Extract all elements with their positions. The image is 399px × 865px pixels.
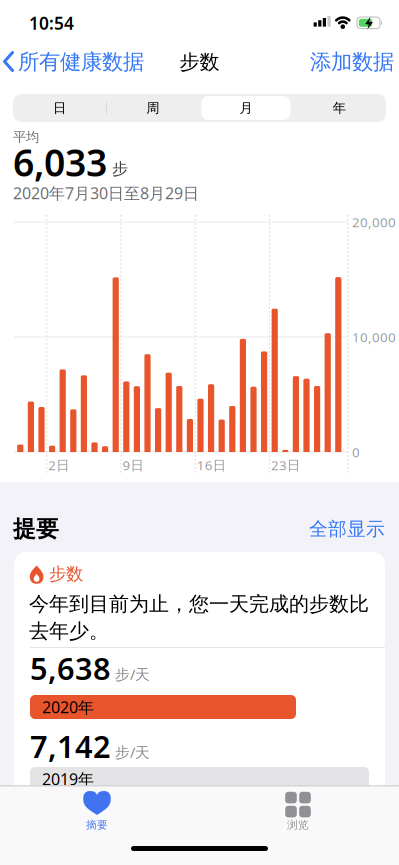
- staticText: 10,000: [352, 328, 396, 346]
- staticText: 6,033: [13, 137, 107, 187]
- staticText: 2019年: [42, 768, 94, 790]
- staticText: 步数: [179, 50, 219, 74]
- staticText: 2020年7月30日至8月29日: [13, 182, 199, 204]
- staticText: 年: [333, 100, 346, 116]
- staticText: 添加数据: [310, 49, 394, 75]
- staticText: 提要: [13, 515, 59, 543]
- button[interactable]: 月: [199, 94, 292, 122]
- staticText: 5,638: [30, 648, 111, 688]
- staticText: 所有健康数据: [18, 49, 144, 75]
- staticText: 摘要: [86, 818, 108, 831]
- button[interactable]: 年: [293, 94, 386, 122]
- staticText: 9日: [122, 456, 143, 474]
- button[interactable]: 全部显示: [265, 514, 385, 544]
- staticText: 20,000: [352, 213, 396, 231]
- staticText: 全部显示: [309, 517, 385, 540]
- staticText: 7,142: [30, 726, 111, 766]
- staticText: 23日: [271, 456, 300, 474]
- staticText: 今年到目前为止，您一天完成的步数比: [29, 592, 369, 616]
- staticText: 浏览: [287, 818, 309, 831]
- button[interactable]: [14, 552, 385, 802]
- button[interactable]: 周: [106, 94, 199, 122]
- staticText: 日: [53, 100, 66, 116]
- staticText: 步数: [49, 563, 83, 585]
- staticText: 平均: [13, 129, 39, 145]
- staticText: 步/天: [115, 664, 150, 684]
- button[interactable]: 浏览: [238, 790, 358, 840]
- staticText: 10:54: [29, 11, 74, 34]
- button[interactable]: 摘要: [37, 790, 157, 840]
- staticText: 0: [352, 443, 360, 461]
- staticText: 步/天: [115, 742, 150, 762]
- staticText: 去年少。: [29, 619, 109, 643]
- staticText: 2020年: [42, 696, 94, 718]
- staticText: 步: [112, 159, 128, 179]
- button[interactable]: 日: [13, 94, 106, 122]
- staticText: 月: [239, 100, 252, 116]
- staticText: 16日: [197, 456, 226, 474]
- button[interactable]: 所有健康数据: [0, 45, 180, 79]
- staticText: 周: [146, 100, 159, 116]
- button[interactable]: 添加数据: [274, 45, 394, 79]
- staticText: 2日: [48, 456, 69, 474]
